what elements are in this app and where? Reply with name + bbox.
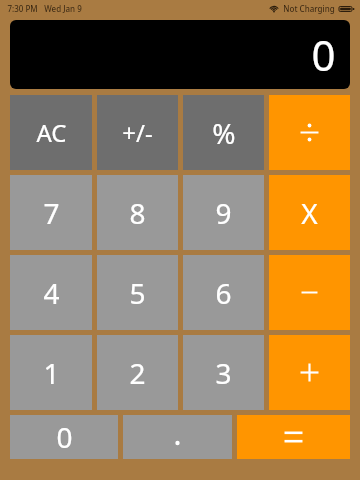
button[interactable]: 9: [183, 175, 264, 250]
button[interactable]: 5: [97, 255, 178, 330]
button[interactable]: 1: [10, 335, 92, 410]
staticText: 0: [311, 26, 336, 83]
staticText: 7: [43, 194, 60, 232]
staticText: 9: [215, 194, 232, 232]
button[interactable]: X: [269, 175, 350, 250]
button[interactable]: Plus: [269, 335, 350, 410]
staticText: 6: [215, 274, 232, 312]
staticText: 8: [129, 194, 146, 232]
button[interactable]: 6: [183, 255, 264, 330]
button[interactable]: 7: [10, 175, 92, 250]
button[interactable]: Minus: [269, 255, 350, 330]
staticText: 5: [129, 274, 146, 312]
button[interactable]: 3: [183, 335, 264, 410]
staticText: Wed Jan 9: [44, 3, 82, 14]
staticText: 2: [129, 354, 146, 392]
staticText: %: [212, 114, 236, 152]
staticText: AC: [36, 116, 67, 149]
staticText: 1: [43, 354, 60, 392]
button[interactable]: Divide: [269, 95, 350, 170]
button[interactable]: Equals: [237, 415, 350, 459]
button[interactable]: AC: [10, 95, 92, 170]
staticText: +/-: [122, 116, 153, 149]
staticText: Not Charging: [283, 3, 335, 14]
button[interactable]: Decimal point: [123, 415, 232, 459]
button[interactable]: 8: [97, 175, 178, 250]
button[interactable]: 0: [10, 415, 118, 459]
button[interactable]: +/-: [97, 95, 178, 170]
staticText: 0: [56, 418, 73, 456]
staticText: 3: [215, 354, 232, 392]
button[interactable]: 2: [97, 335, 178, 410]
button[interactable]: %: [183, 95, 264, 170]
staticText: 4: [43, 274, 60, 312]
staticText: 7:30 PM: [7, 3, 38, 14]
staticText: X: [301, 194, 318, 232]
button[interactable]: 4: [10, 255, 92, 330]
